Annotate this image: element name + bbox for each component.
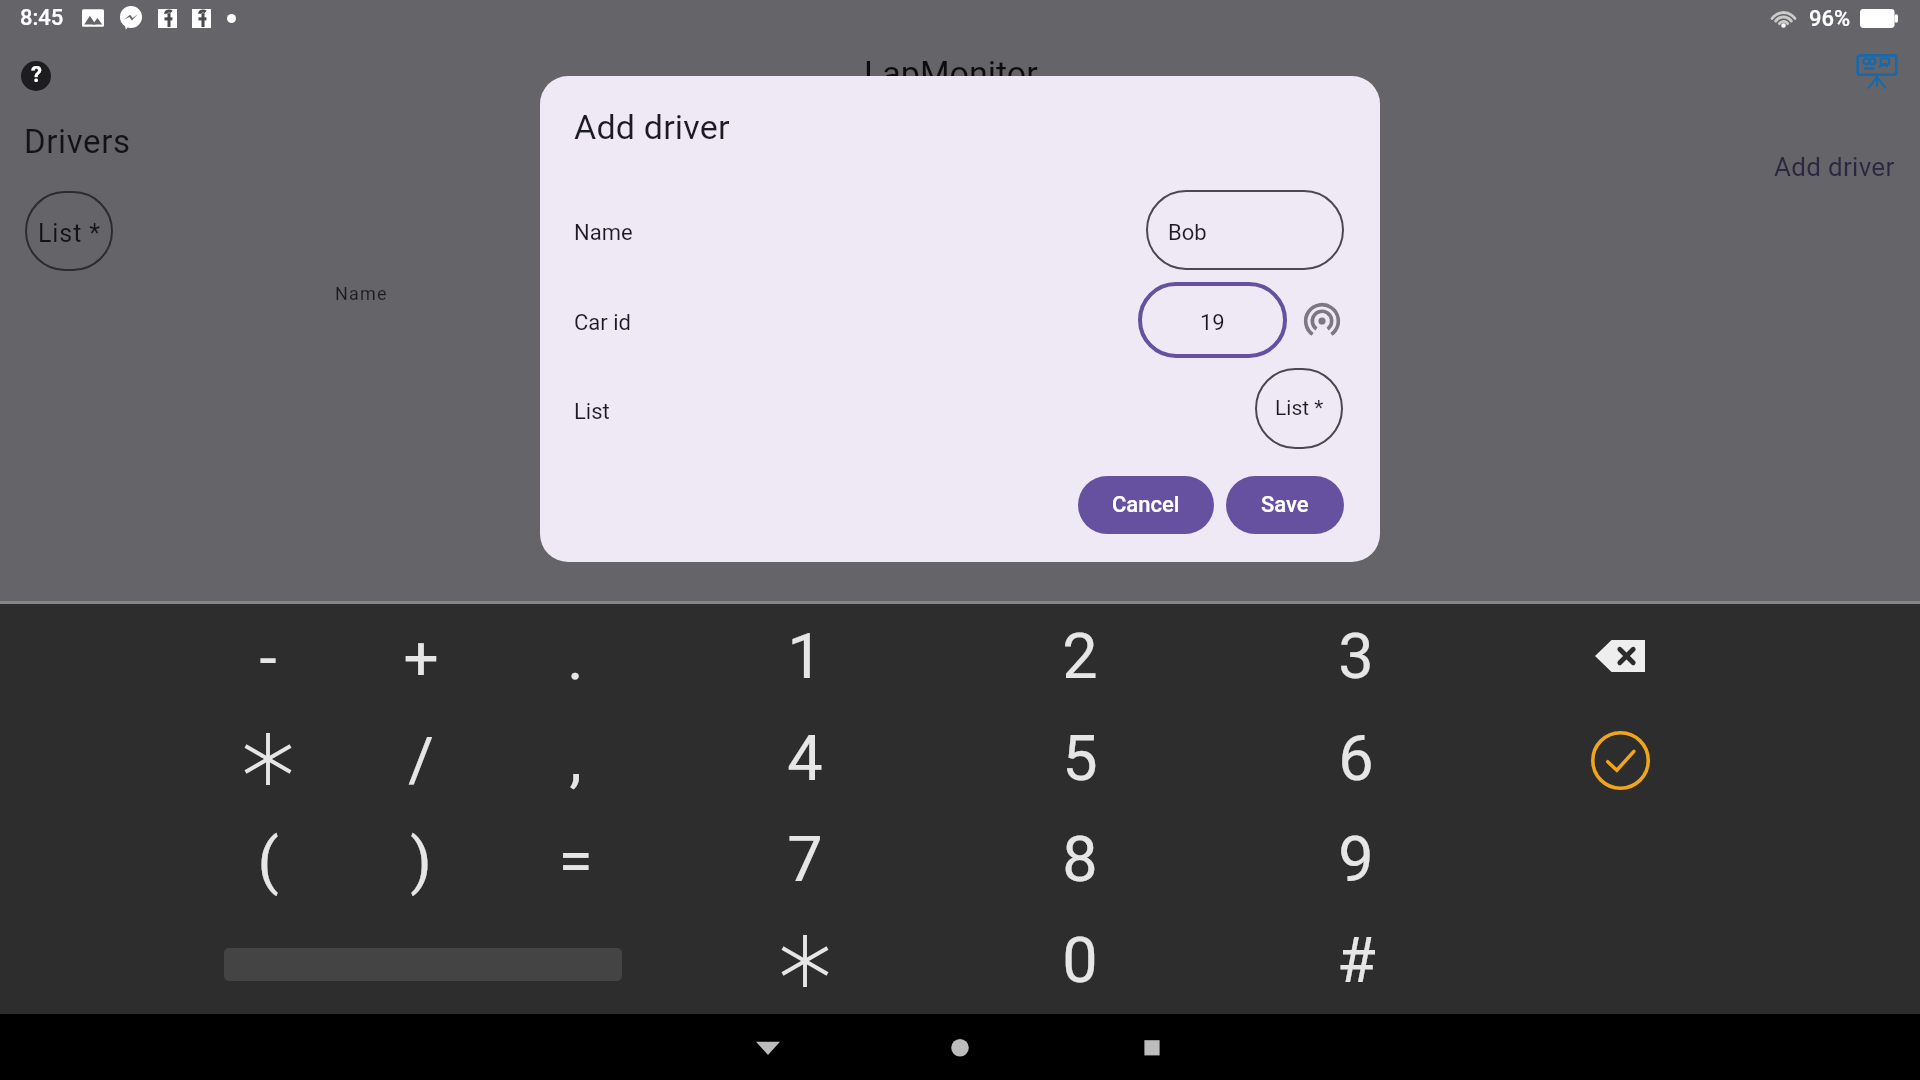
button[interactable]: 2 bbox=[1025, 612, 1135, 702]
button[interactable]: Add driver bbox=[1774, 152, 1895, 182]
button[interactable]: Home bbox=[940, 1027, 980, 1067]
staticText: . bbox=[567, 621, 584, 694]
staticText: Add driver bbox=[574, 107, 730, 147]
staticText: 96% bbox=[1809, 6, 1851, 32]
staticText: = bbox=[558, 824, 593, 897]
button[interactable]: Save bbox=[1226, 476, 1344, 534]
button[interactable]: Asterisk bbox=[750, 916, 860, 1006]
button[interactable]: # bbox=[1301, 916, 1411, 1006]
button[interactable]: 4 bbox=[750, 714, 860, 804]
button[interactable]: Scan car id bbox=[1303, 302, 1341, 340]
button[interactable]: 0 bbox=[1025, 916, 1135, 1006]
staticText: LapMonitor bbox=[864, 53, 1038, 93]
button[interactable]: 7 bbox=[750, 815, 860, 905]
button[interactable]: = bbox=[520, 815, 630, 905]
staticText: - bbox=[259, 621, 277, 694]
staticText: 8 bbox=[1062, 823, 1098, 897]
staticText: Bob bbox=[1168, 220, 1207, 246]
staticText: 4 bbox=[787, 722, 823, 796]
button[interactable]: Bob bbox=[1146, 190, 1344, 270]
staticText: List bbox=[574, 399, 610, 425]
staticText: Drivers bbox=[24, 122, 131, 161]
staticText: 6 bbox=[1338, 722, 1374, 796]
button[interactable]: Asterisk bbox=[213, 714, 323, 804]
staticText: + bbox=[403, 621, 439, 694]
staticText: ? bbox=[31, 62, 42, 88]
staticText: ( bbox=[257, 824, 279, 897]
button[interactable]: + bbox=[366, 612, 476, 702]
button[interactable]: Help bbox=[21, 61, 51, 91]
button[interactable]: Done bbox=[1590, 730, 1651, 791]
button[interactable]: ) bbox=[366, 815, 476, 905]
button[interactable]: 6 bbox=[1301, 714, 1411, 804]
staticText: 8:45 bbox=[20, 5, 64, 31]
staticText: Save bbox=[1261, 492, 1309, 518]
staticText: 5 bbox=[1062, 722, 1098, 796]
staticText: 2 bbox=[1062, 620, 1098, 694]
staticText: / bbox=[408, 723, 434, 796]
staticText: 1 bbox=[787, 620, 823, 694]
button[interactable]: 3 bbox=[1301, 612, 1411, 702]
staticText: 3 bbox=[1338, 620, 1374, 694]
staticText: List * bbox=[38, 219, 101, 248]
staticText: # bbox=[1337, 924, 1376, 998]
button[interactable]: Back bbox=[748, 1027, 788, 1067]
button[interactable]: . bbox=[520, 612, 630, 702]
staticText: ) bbox=[410, 824, 432, 897]
staticText: Name bbox=[574, 220, 633, 246]
button[interactable]: Cancel bbox=[1078, 476, 1214, 534]
button[interactable]: Lap board bbox=[1854, 48, 1900, 94]
button[interactable]: / bbox=[366, 714, 476, 804]
button[interactable]: Backspace bbox=[1595, 640, 1645, 672]
button[interactable]: , bbox=[520, 714, 630, 804]
staticText: 0 bbox=[1062, 924, 1098, 998]
staticText: 7 bbox=[787, 823, 823, 897]
staticText: List * bbox=[1275, 396, 1324, 421]
button[interactable]: 19 bbox=[1138, 282, 1287, 358]
button[interactable]: List * bbox=[1255, 368, 1343, 449]
button[interactable]: List * bbox=[25, 191, 113, 271]
staticText: 19 bbox=[1200, 310, 1225, 336]
button[interactable]: - bbox=[213, 612, 323, 702]
button[interactable]: 1 bbox=[750, 612, 860, 702]
button[interactable]: 5 bbox=[1025, 714, 1135, 804]
button[interactable]: ( bbox=[213, 815, 323, 905]
staticText: Cancel bbox=[1112, 492, 1180, 518]
button[interactable]: 8 bbox=[1025, 815, 1135, 905]
button[interactable]: 9 bbox=[1301, 815, 1411, 905]
staticText: 9 bbox=[1338, 823, 1374, 897]
staticText: , bbox=[569, 723, 582, 796]
staticText: Car id bbox=[574, 310, 631, 336]
button[interactable]: Recents bbox=[1132, 1027, 1172, 1067]
staticText: Name bbox=[335, 283, 388, 304]
